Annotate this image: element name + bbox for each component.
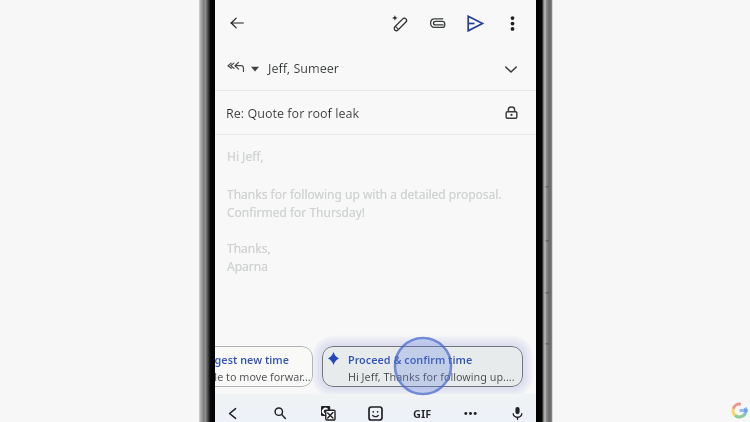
staticText: Confirmed for Thursday!: [227, 204, 366, 220]
staticText: Hi Jeff, Thanks for following up....: [348, 369, 515, 384]
button[interactable]: Search: [267, 400, 293, 422]
button[interactable]: Back: [219, 400, 245, 422]
button[interactable]: Translate: [315, 400, 341, 422]
button[interactable]: Attach file: [419, 5, 455, 41]
staticText: Thanks,: [227, 240, 271, 256]
staticText: Proceed & confirm time: [348, 352, 473, 367]
staticText: nable to move forwar...: [215, 369, 311, 384]
button[interactable]: Jeff, Sumeer: [215, 47, 536, 90]
button[interactable]: Stickers: [362, 400, 388, 422]
button[interactable]: Suggest new time: [215, 346, 313, 387]
staticText: Aparna: [227, 258, 268, 274]
button[interactable]: Send: [456, 5, 492, 41]
button[interactable]: Back: [219, 5, 255, 41]
staticText: Jeff, Sumeer: [268, 60, 339, 77]
staticText: Re: Quote for roof leak: [226, 105, 360, 122]
button[interactable]: GIF: [407, 400, 437, 422]
button[interactable]: Re: Quote for roof leak: [215, 91, 536, 134]
button[interactable]: More options: [494, 5, 530, 41]
button[interactable]: Expand recipients: [497, 55, 525, 83]
button[interactable]: Confidential mode: [498, 99, 525, 126]
button[interactable]: More: [457, 400, 483, 422]
staticText: Thanks for following up with a detailed …: [227, 186, 502, 202]
staticText: Hi Jeff,: [227, 148, 264, 164]
staticText: GIF: [413, 406, 432, 421]
staticText: Suggest new time: [215, 352, 290, 367]
button[interactable]: Polish with AI: [382, 5, 418, 41]
button[interactable]: Proceed & confirm time: [322, 346, 523, 387]
button[interactable]: Voice input: [504, 400, 530, 422]
